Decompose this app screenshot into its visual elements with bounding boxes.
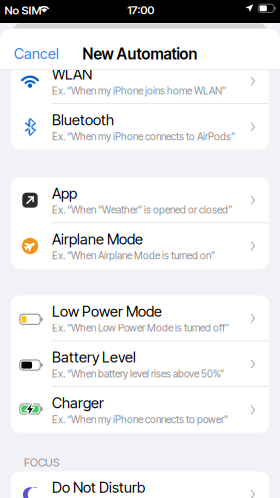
staticText: Do Not Disturb [52,479,145,496]
staticText: App [52,184,77,202]
button[interactable]: WLAN [11,58,269,104]
button[interactable]: Cancel [8,38,65,69]
button[interactable]: Charger [11,387,269,433]
button[interactable]: Bluetooth [11,104,269,150]
staticText: WLAN [52,65,92,83]
staticText: Bluetooth [52,111,114,129]
staticText: Battery Level [52,348,136,366]
staticText: Cancel [14,45,59,62]
staticText: FOCUS [24,456,59,469]
staticText: Ex. “When my iPhone connects to power” [52,413,228,426]
staticText: Low Power Mode [52,302,162,320]
staticText: Ex. “When Airplane Mode is turned on” [52,249,215,262]
button[interactable]: Low Power Mode [11,295,269,341]
button[interactable]: Airplane Mode [11,223,269,269]
staticText: Ex. “When battery level rises above 50%” [52,368,224,380]
staticText: Charger [52,394,104,412]
staticText: New Automation [82,45,197,63]
button[interactable]: Do Not Disturb [11,471,269,498]
staticText: Ex. “When Low Power Mode is turned off” [52,322,229,334]
staticText: Ex. “When my iPhone connects to AirPods” [52,130,235,143]
staticText: Airplane Mode [52,230,143,248]
button[interactable]: App [11,177,269,223]
staticText: Ex. “When “Weather” is opened or closed” [52,204,232,216]
button[interactable]: Battery Level [11,341,269,387]
staticText: 17:00 [127,3,154,17]
staticText: Ex. “When my iPhone joins home WLAN” [52,85,226,97]
staticText: No SIM [4,3,41,17]
